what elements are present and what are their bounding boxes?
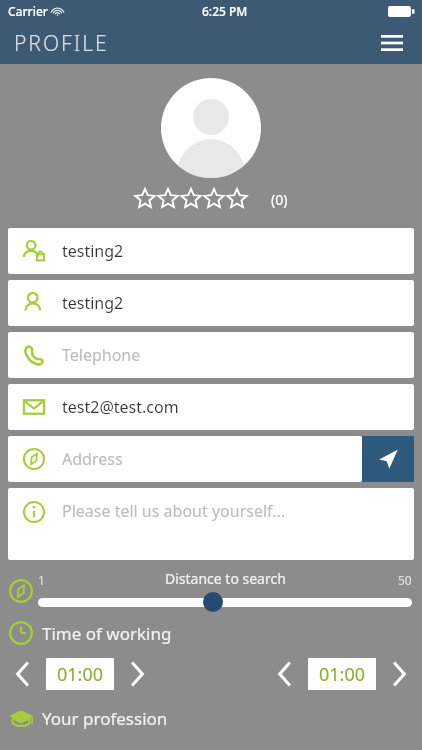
staticText: Your profession	[42, 707, 168, 730]
button[interactable]: Rate	[157, 188, 179, 210]
staticText: PROFILE	[14, 29, 109, 58]
staticText: 6:25 PM	[202, 3, 248, 19]
button[interactable]: 01:00	[46, 658, 114, 690]
button[interactable]: testing2	[8, 228, 414, 274]
button[interactable]: Address	[8, 436, 362, 482]
button[interactable]: testing2	[8, 280, 414, 326]
staticText: Please tell us about yourself...	[62, 500, 286, 522]
staticText: 01:00	[319, 662, 366, 687]
staticText: Address	[62, 448, 123, 470]
button[interactable]: 01:00	[308, 658, 376, 690]
button[interactable]: Please tell us about yourself...	[8, 488, 414, 560]
button[interactable]: Rate	[203, 188, 225, 210]
button[interactable]: Distance slider	[38, 592, 412, 612]
button[interactable]: Telephone	[8, 332, 414, 378]
button[interactable]: Rate	[134, 188, 156, 210]
staticText: Carrier	[8, 3, 48, 19]
staticText: Telephone	[62, 344, 141, 366]
button[interactable]: Previous start time	[6, 654, 40, 694]
staticText: Time of working	[42, 622, 172, 645]
staticText: 50	[398, 572, 412, 588]
button[interactable]: Previous end time	[268, 654, 302, 694]
button[interactable]: Rate	[180, 188, 202, 210]
staticText: (0)	[271, 190, 288, 209]
staticText: test2@test.com	[62, 396, 179, 418]
staticText: Distance to search	[165, 569, 286, 588]
staticText: testing2	[62, 292, 124, 314]
staticText: testing2	[62, 240, 124, 262]
button[interactable]: Menu	[372, 23, 412, 63]
button[interactable]: Rate	[226, 188, 248, 210]
staticText: 1	[38, 572, 45, 588]
button[interactable]: Your profession	[8, 702, 422, 734]
button[interactable]: Next end time	[382, 654, 416, 694]
button[interactable]: test2@test.com	[8, 384, 414, 430]
button[interactable]: Next start time	[120, 654, 154, 694]
staticText: 01:00	[57, 662, 104, 687]
button[interactable]: Locate	[362, 436, 414, 482]
